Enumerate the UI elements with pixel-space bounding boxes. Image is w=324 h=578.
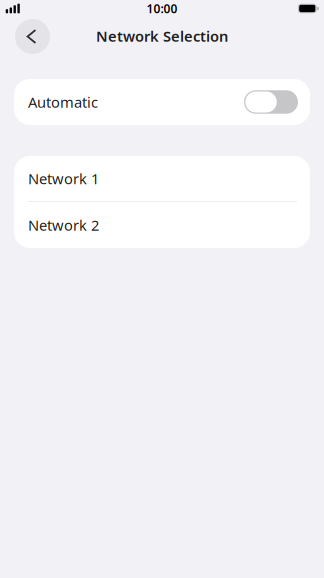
button[interactable]: Network 2 [14,202,310,248]
staticText: Network 2 [28,215,99,235]
button[interactable]: Back [15,19,50,54]
staticText: 10:00 [146,0,177,16]
staticText: Network Selection [96,26,228,46]
staticText: Automatic [28,92,98,112]
staticText: Network 1 [28,169,99,188]
button[interactable]: Network 1 [14,156,310,201]
button[interactable]: Automatic [14,79,310,125]
